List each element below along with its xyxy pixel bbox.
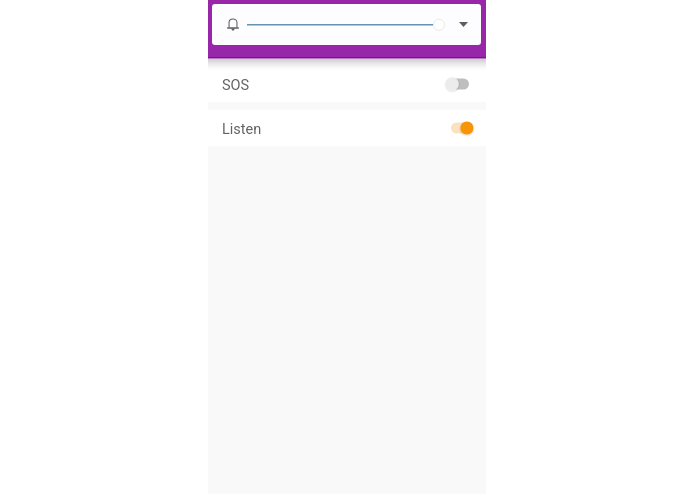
button[interactable]: Enabled: [445, 116, 475, 140]
button[interactable]: Volume slider: [243, 13, 443, 37]
button[interactable]: Notifications: [223, 14, 243, 34]
button[interactable]: Disabled: [445, 72, 475, 96]
button[interactable]: SOS: [208, 66, 486, 102]
staticText: Listen: [222, 121, 262, 138]
staticText: SOS: [222, 77, 250, 94]
button[interactable]: Expand: [451, 13, 475, 37]
button[interactable]: Listen: [208, 110, 486, 146]
